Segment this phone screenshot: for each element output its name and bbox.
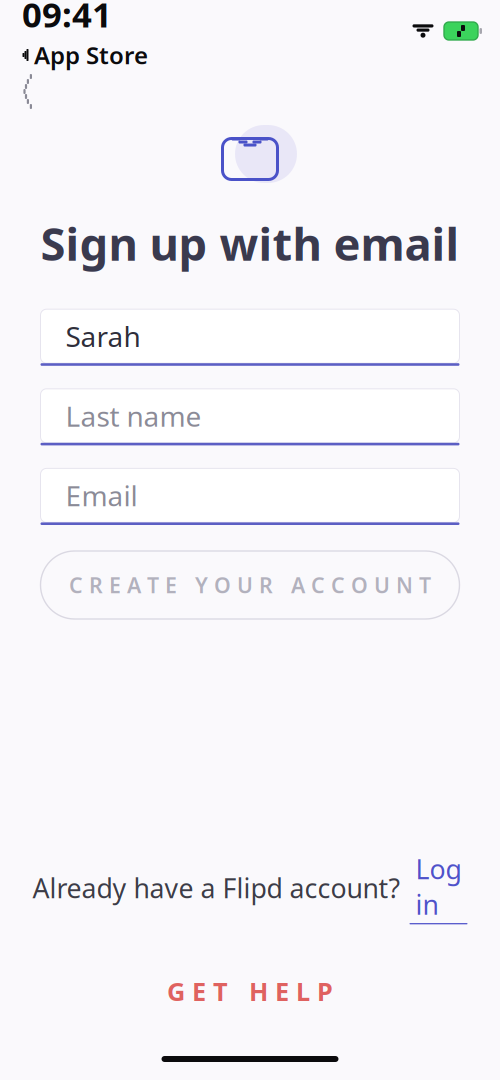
staticText: Already have a Flipd account? (32, 870, 400, 905)
staticText: Email (65, 477, 137, 514)
button[interactable]: Sarah (40, 309, 459, 366)
button[interactable]: G E T H E L P (141, 962, 359, 1020)
staticText: Sarah (65, 318, 140, 355)
staticText: Last name (65, 397, 201, 434)
staticText: App Store (34, 39, 148, 71)
button[interactable]: Last name (40, 389, 459, 445)
staticText: Sign up with email (40, 213, 459, 273)
button[interactable]: Log in (409, 851, 467, 924)
staticText: C R E A T E Y O U R A C C O U N T (69, 571, 431, 599)
button[interactable]: Email (40, 468, 459, 525)
button[interactable]: Back (0, 66, 50, 117)
button[interactable]: C R E A T E Y O U R A C C O U N T (40, 551, 459, 619)
staticText: G E T H E L P (167, 974, 333, 1008)
staticText: 09:41 (22, 0, 112, 37)
staticText: Log in (415, 851, 461, 922)
